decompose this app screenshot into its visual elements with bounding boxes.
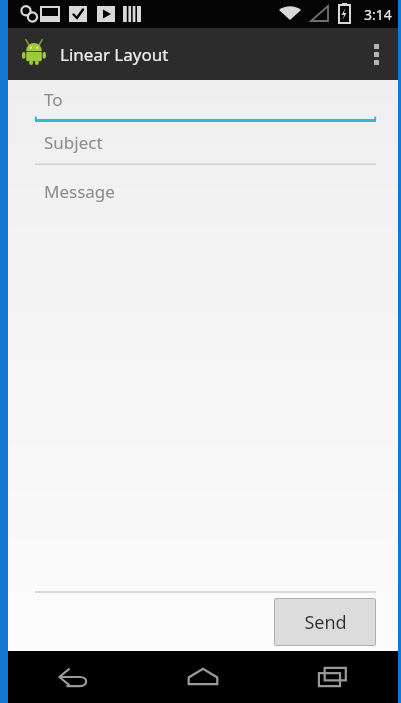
- button[interactable]: Send: [274, 598, 376, 646]
- button[interactable]: More options: [354, 28, 398, 80]
- staticText: To: [44, 88, 63, 111]
- staticText: 3:14: [364, 5, 392, 24]
- staticText: Message: [44, 180, 115, 203]
- button[interactable]: Recent apps: [268, 651, 398, 703]
- staticText: Linear Layout: [60, 43, 169, 66]
- staticText: Subject: [44, 131, 103, 154]
- button[interactable]: Home: [138, 651, 268, 703]
- staticText: Send: [304, 610, 347, 635]
- button[interactable]: Back: [8, 651, 138, 703]
- button[interactable]: To: [35, 80, 376, 123]
- button[interactable]: Subject: [35, 123, 376, 166]
- button[interactable]: Message: [35, 166, 376, 593]
